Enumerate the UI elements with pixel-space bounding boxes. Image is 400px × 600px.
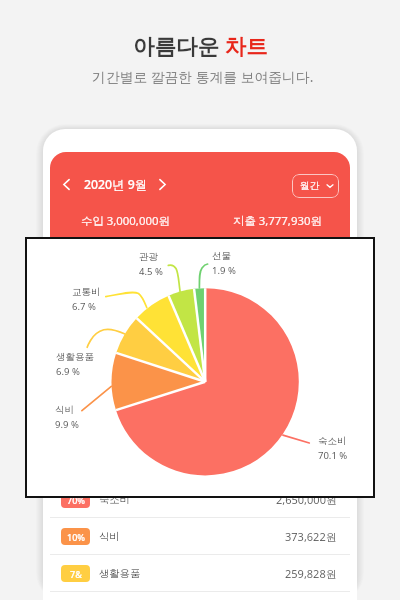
staticText: 식비 xyxy=(55,404,74,416)
button[interactable]: 월간 xyxy=(292,174,339,198)
staticText: 2020년 9월 xyxy=(84,176,147,193)
staticText: 10% xyxy=(67,531,85,543)
staticText: 7& xyxy=(70,568,82,580)
button[interactable]: 7& xyxy=(50,555,350,591)
staticText: 아름다운 차트 xyxy=(133,31,268,60)
staticText: 6.9 % xyxy=(56,365,80,378)
staticText: 생활용품 xyxy=(56,351,94,363)
button[interactable]: 70% xyxy=(50,481,350,517)
staticText: 6.7 % xyxy=(72,300,96,313)
staticText: 생활용품 xyxy=(99,567,141,580)
staticText: 259,828원 xyxy=(285,566,337,581)
button[interactable]: Previous month xyxy=(60,176,169,193)
staticText: 9.9 % xyxy=(55,418,79,431)
staticText: 숙소비 xyxy=(318,435,347,447)
staticText: 숙소비 xyxy=(99,493,130,506)
other: Next month xyxy=(156,178,169,191)
staticText: 70% xyxy=(67,494,85,506)
staticText: 식비 xyxy=(99,530,120,543)
staticText: 2,650,000원 xyxy=(276,492,337,507)
staticText: 지출 3,777,930원 xyxy=(233,213,322,229)
staticText: 선물 xyxy=(212,250,231,262)
staticText: 기간별로 깔끔한 통계를 보여줍니다. xyxy=(92,67,314,86)
staticText: 관광 xyxy=(139,251,158,263)
staticText: 4.5 % xyxy=(139,265,163,278)
button[interactable]: 10% xyxy=(50,518,350,554)
staticText: 70.1 % xyxy=(318,449,348,462)
staticText: 1.9 % xyxy=(212,264,236,277)
staticText: 수입 3,000,000원 xyxy=(81,213,170,229)
other: Previous month xyxy=(60,178,73,191)
staticText: 월간 xyxy=(300,180,320,192)
staticText: 373,622원 xyxy=(285,529,337,544)
staticText: 교통비 xyxy=(72,286,101,298)
